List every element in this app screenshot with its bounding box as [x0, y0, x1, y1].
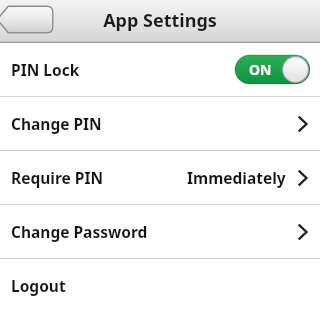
- button[interactable]: Change PIN: [0, 97, 320, 150]
- staticText: ON: [249, 60, 272, 79]
- staticText: Change PIN: [11, 113, 102, 134]
- staticText: Logout: [11, 275, 66, 296]
- staticText: Immediately: [187, 167, 286, 188]
- button[interactable]: Logout: [0, 259, 320, 312]
- staticText: Change Password: [11, 221, 148, 242]
- button[interactable]: Change Password: [0, 205, 320, 258]
- button[interactable]: Require PIN: [0, 151, 320, 204]
- staticText: Require PIN: [11, 167, 104, 188]
- staticText: PIN Lock: [11, 59, 80, 80]
- button[interactable]: PIN Lock: [0, 43, 320, 96]
- button[interactable]: PIN Lock on: [235, 55, 310, 84]
- staticText: App Settings: [0, 8, 320, 33]
- button[interactable]: Back: [0, 5, 54, 34]
